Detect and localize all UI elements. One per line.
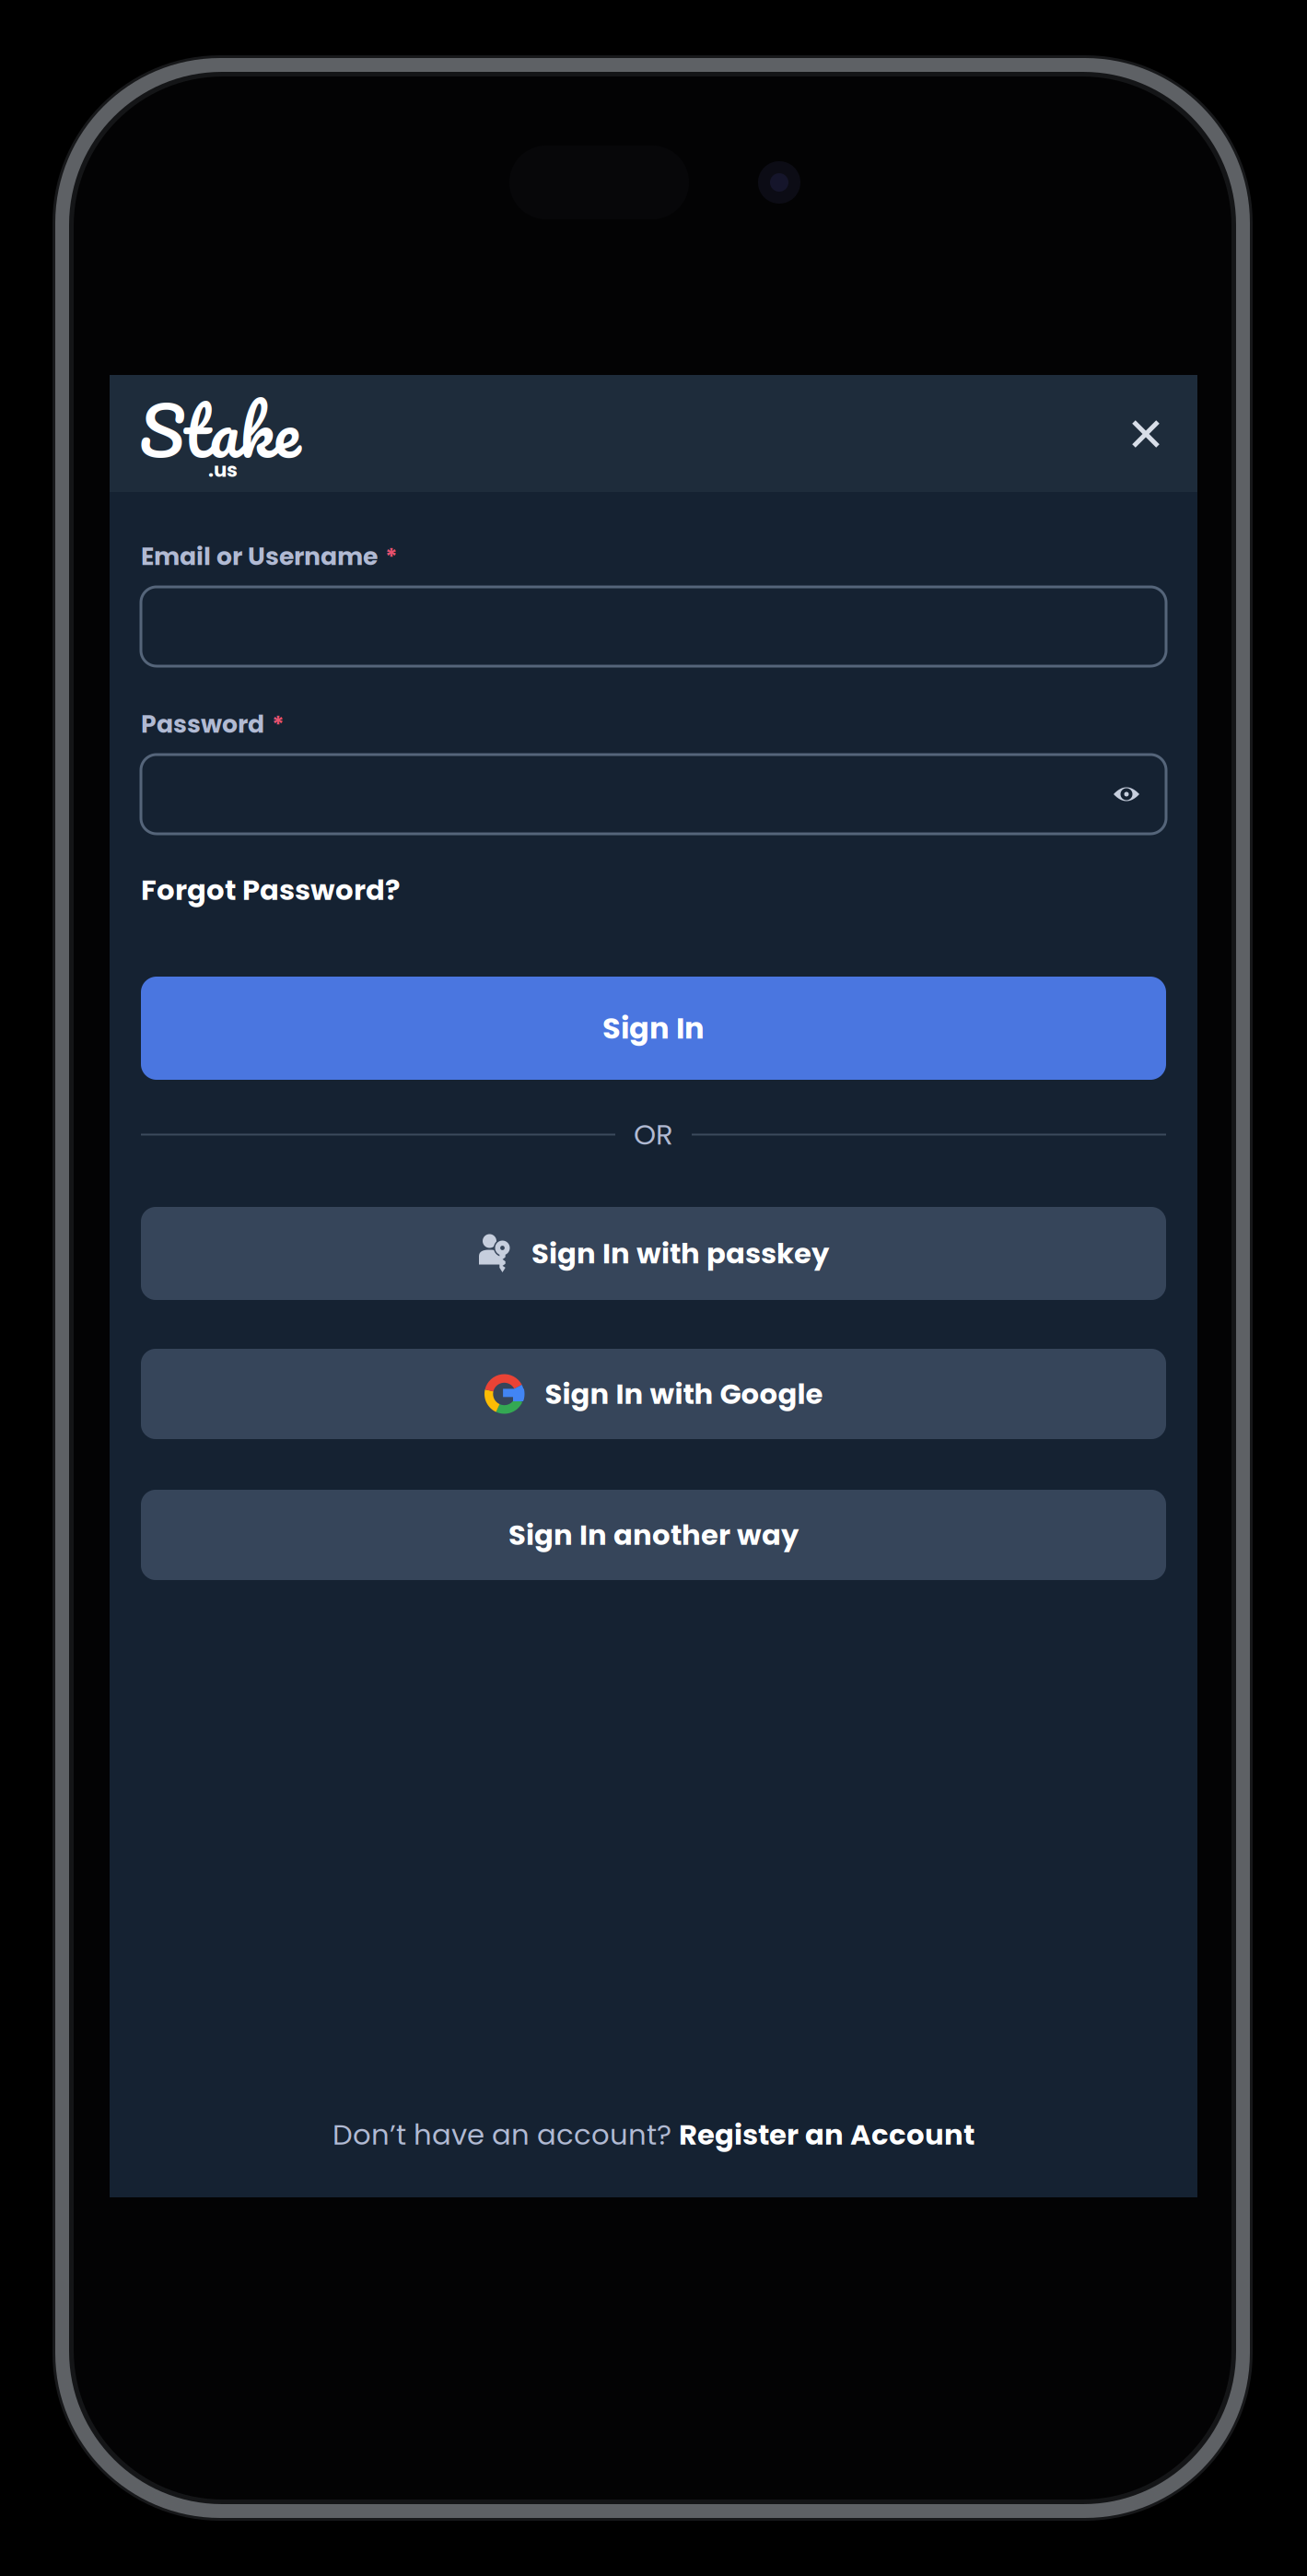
button[interactable]: Don’t have an account? xyxy=(333,2107,974,2162)
staticText: * xyxy=(385,541,398,573)
button[interactable]: Sign In xyxy=(141,977,1166,1080)
staticText: Sign In with passkey xyxy=(531,1234,829,1273)
staticText: Forgot Password? xyxy=(141,870,400,910)
staticText: * xyxy=(272,708,285,741)
button[interactable]: Sign In another way xyxy=(141,1490,1166,1580)
button[interactable]: Forgot Password? xyxy=(141,871,400,909)
staticText: OR xyxy=(634,1115,673,1154)
button[interactable]: Sign In with Google xyxy=(141,1349,1166,1439)
staticText: Password xyxy=(141,707,264,741)
staticText: .us xyxy=(208,456,238,484)
staticText: Don’t have an account? xyxy=(333,2115,679,2154)
button[interactable]: Sign In with passkey xyxy=(141,1207,1166,1300)
staticText: Email or Username xyxy=(141,539,378,574)
staticText: Sign In with Google xyxy=(545,1374,823,1414)
staticText: Stake xyxy=(139,373,300,487)
staticText: Register an Account xyxy=(679,2115,974,2154)
staticText: Sign In another way xyxy=(508,1515,799,1555)
staticText: Sign In xyxy=(602,1008,705,1049)
button[interactable]: Show password xyxy=(1094,755,1159,834)
button[interactable]: Close xyxy=(1120,408,1172,460)
